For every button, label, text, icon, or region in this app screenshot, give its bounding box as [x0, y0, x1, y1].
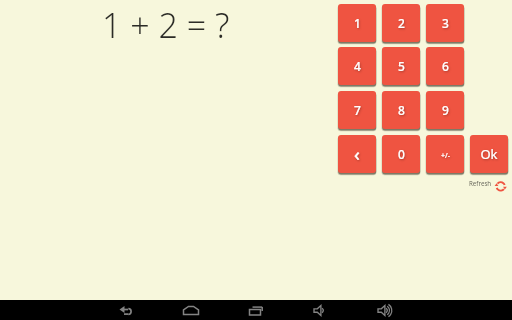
staticText: 2: [398, 15, 405, 31]
staticText: 7: [354, 102, 361, 118]
button[interactable]: Recent apps: [213, 300, 278, 320]
button[interactable]: 6: [426, 47, 464, 85]
button[interactable]: 4: [338, 47, 376, 85]
button[interactable]: 9: [426, 91, 464, 129]
button[interactable]: 8: [382, 91, 420, 129]
button[interactable]: 0: [382, 135, 420, 173]
button[interactable]: Refresh: [466, 176, 510, 194]
button[interactable]: +/-: [426, 135, 464, 173]
button[interactable]: 3: [426, 4, 464, 42]
button[interactable]: Home: [148, 300, 213, 320]
staticText: 6: [442, 58, 449, 74]
button[interactable]: Back: [104, 300, 148, 320]
staticText: Ok: [480, 145, 498, 163]
other: Refresh: [495, 181, 508, 193]
staticText: +/-: [441, 151, 450, 161]
staticText: 5: [398, 58, 405, 74]
button[interactable]: Volume up: [342, 300, 406, 320]
button[interactable]: 5: [382, 47, 420, 85]
staticText: 3: [442, 15, 449, 31]
staticText: 0: [398, 146, 405, 162]
staticText: ‹: [354, 142, 360, 167]
button[interactable]: Ok: [470, 135, 508, 173]
staticText: 1 + 2 = ?: [102, 2, 230, 48]
staticText: 4: [354, 58, 361, 74]
button[interactable]: 2: [382, 4, 420, 42]
staticText: 1: [354, 15, 361, 31]
button[interactable]: 1: [338, 4, 376, 42]
button[interactable]: 7: [338, 91, 376, 129]
button[interactable]: Backspace: [338, 135, 376, 173]
staticText: 8: [398, 102, 405, 118]
staticText: 9: [442, 102, 449, 118]
staticText: Refresh: [469, 179, 492, 187]
button[interactable]: Volume down: [278, 300, 342, 320]
